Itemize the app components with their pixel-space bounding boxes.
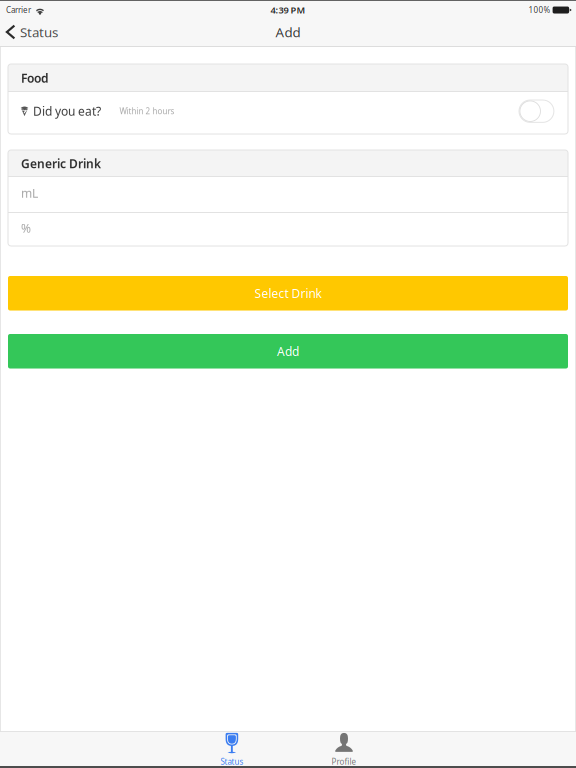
staticText: Status	[20, 23, 58, 41]
staticText: Add	[277, 343, 299, 359]
button[interactable]: Status	[182, 731, 282, 768]
staticText: Status	[220, 756, 243, 767]
button[interactable]: Add	[8, 334, 568, 368]
staticText: Within 2 hours	[119, 106, 174, 116]
button[interactable]: Select Drink	[8, 276, 568, 310]
staticText: Food	[21, 70, 49, 86]
staticText: Profile	[331, 756, 356, 767]
staticText: 100%	[528, 5, 550, 15]
button[interactable]: Profile	[294, 731, 394, 768]
staticText: Add	[275, 23, 300, 41]
staticText: %	[21, 220, 31, 236]
staticText: 4:39 PM	[270, 4, 305, 16]
staticText: Generic Drink	[21, 155, 101, 171]
staticText: Carrier	[6, 5, 31, 15]
button[interactable]: Status	[0, 20, 64, 47]
staticText: Did you eat?	[33, 103, 101, 119]
staticText: Select Drink	[254, 285, 321, 301]
staticText: mL	[21, 185, 38, 201]
